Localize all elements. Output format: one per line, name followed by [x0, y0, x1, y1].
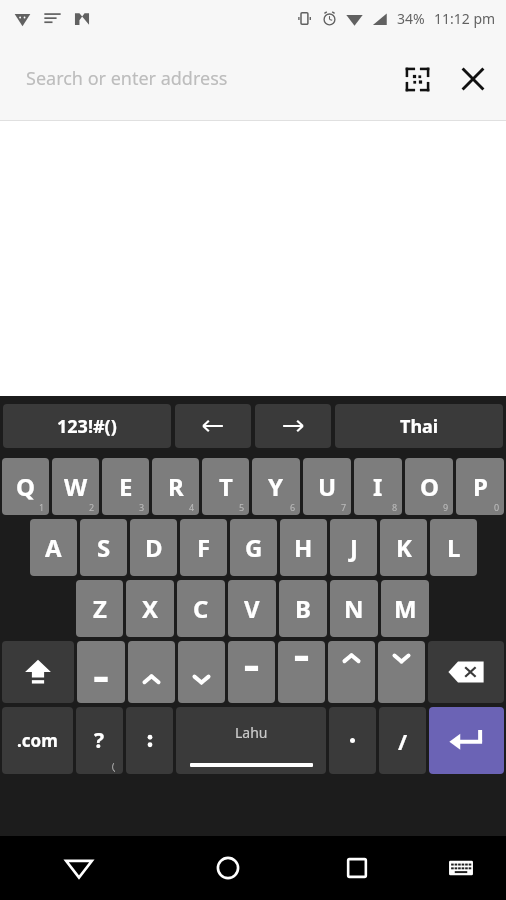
staticText: X	[142, 592, 159, 625]
staticText: Thai	[400, 414, 439, 439]
staticText: 123!#()	[57, 414, 117, 439]
staticText: V	[244, 592, 260, 625]
button[interactable]: G	[230, 519, 277, 576]
staticText: 0	[494, 501, 500, 513]
staticText: .com	[17, 729, 58, 752]
button[interactable]: N	[330, 580, 378, 637]
staticText: Search or enter address	[26, 66, 228, 91]
staticText: N	[344, 592, 364, 625]
button[interactable]: D	[130, 519, 177, 576]
button[interactable]: 123!#()	[3, 404, 171, 448]
staticText: 1	[39, 501, 45, 513]
button[interactable]: A	[30, 519, 77, 576]
button[interactable]: R	[152, 458, 199, 515]
staticText: Q	[16, 470, 35, 503]
staticText: 4	[189, 501, 195, 513]
staticText: P	[473, 470, 488, 503]
staticText: Y	[268, 470, 284, 503]
button[interactable]: W	[52, 458, 99, 515]
button[interactable]	[77, 641, 125, 703]
staticText: G	[245, 531, 263, 564]
button[interactable]: Switch keyboard	[415, 836, 506, 900]
button[interactable]: S	[80, 519, 127, 576]
button[interactable]: U	[303, 458, 351, 515]
staticText: 11:12 pm	[434, 9, 496, 28]
button[interactable]	[378, 641, 425, 703]
staticText: C	[193, 592, 209, 625]
button[interactable]: Recent apps	[298, 836, 415, 900]
staticText: 3	[139, 501, 145, 513]
button[interactable]: E	[102, 458, 149, 515]
staticText: (̩	[112, 761, 115, 772]
staticText: 7	[341, 501, 347, 513]
button[interactable]	[328, 641, 375, 703]
staticText: F	[197, 531, 211, 564]
staticText: B	[295, 592, 311, 625]
button[interactable]	[128, 641, 175, 703]
staticText: T	[219, 470, 233, 503]
button[interactable]: T	[202, 458, 249, 515]
button[interactable]: O	[405, 458, 453, 515]
staticText: /	[398, 726, 408, 756]
button[interactable]: P	[456, 458, 504, 515]
staticText: W	[64, 470, 88, 503]
staticText: ?	[94, 726, 105, 755]
button[interactable]: Home	[158, 836, 298, 900]
button[interactable]: Move right	[255, 404, 331, 448]
button[interactable]: V	[228, 580, 276, 637]
button[interactable]: I	[354, 458, 402, 515]
staticText: Z	[93, 592, 107, 625]
button[interactable]: Move left	[175, 404, 251, 448]
button[interactable]: B	[279, 580, 327, 637]
button[interactable]	[178, 641, 225, 703]
button[interactable]: K	[380, 519, 427, 576]
staticText: D	[145, 531, 163, 564]
button[interactable]: Thai	[335, 404, 503, 448]
button[interactable]: C	[177, 580, 225, 637]
button[interactable]: Shift	[2, 641, 74, 703]
staticText: E	[119, 470, 133, 503]
staticText: R	[168, 470, 184, 503]
staticText: A	[45, 531, 62, 564]
staticText: M	[394, 592, 417, 625]
button[interactable]: Enter	[429, 707, 504, 774]
button[interactable]: Y	[252, 458, 300, 515]
staticText: 6	[290, 501, 296, 513]
staticText: H	[294, 531, 313, 564]
button[interactable]: X	[126, 580, 174, 637]
staticText: J	[350, 531, 358, 564]
button[interactable]	[329, 707, 376, 774]
staticText: 5	[239, 501, 245, 513]
button[interactable]: Scan QR code	[400, 62, 434, 96]
button[interactable]: F	[180, 519, 227, 576]
staticText: 34%	[397, 9, 425, 28]
staticText: I	[373, 470, 383, 503]
button[interactable]: Backspace	[428, 641, 504, 703]
button[interactable]: H	[280, 519, 327, 576]
button[interactable]: Q	[2, 458, 49, 515]
staticText: O	[420, 470, 439, 503]
staticText: Lahu	[235, 723, 268, 742]
staticText: S	[97, 531, 111, 564]
button[interactable]: Close	[456, 62, 490, 96]
button[interactable]: /	[379, 707, 426, 774]
button[interactable]	[228, 641, 275, 703]
staticText: 2	[89, 501, 95, 513]
staticText: U	[318, 470, 337, 503]
staticText: 8	[392, 501, 398, 513]
button[interactable]: L	[430, 519, 477, 576]
button[interactable]: Z	[76, 580, 123, 637]
button[interactable]: .com	[2, 707, 73, 774]
button[interactable]	[278, 641, 325, 703]
button[interactable]: Back	[0, 836, 158, 900]
button[interactable]: Colon	[126, 707, 173, 774]
button[interactable]: Space, Lahu	[176, 707, 326, 774]
button[interactable]: M	[381, 580, 429, 637]
staticText: 9	[443, 501, 449, 513]
staticText: L	[447, 531, 461, 564]
staticText: K	[396, 531, 412, 564]
button[interactable]: J	[330, 519, 377, 576]
button[interactable]: ?	[76, 707, 123, 774]
